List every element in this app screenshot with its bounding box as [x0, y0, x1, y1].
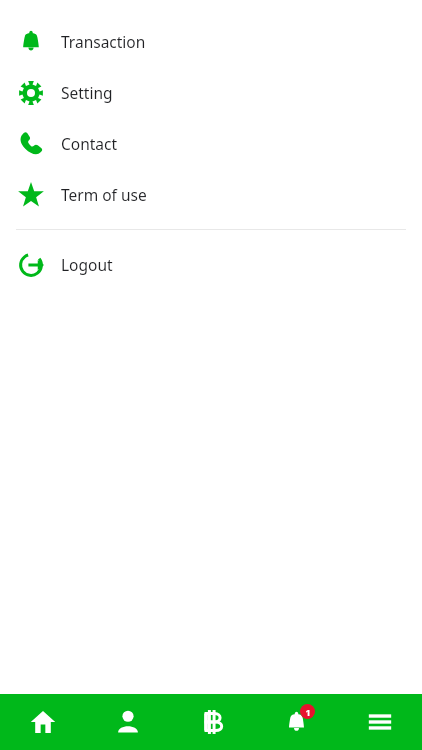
button[interactable]: Notifications, 1 new: [254, 694, 338, 750]
button[interactable]: Bitcoin: [170, 694, 254, 750]
button[interactable]: Menu: [338, 694, 422, 750]
button[interactable]: Transaction: [0, 16, 422, 67]
staticText: Term of use: [61, 184, 147, 205]
button[interactable]: Logout: [0, 239, 422, 290]
button[interactable]: Setting: [0, 67, 422, 118]
staticText: Logout: [61, 254, 113, 275]
staticText: Transaction: [61, 31, 146, 52]
button[interactable]: Home: [0, 694, 85, 750]
staticText: Setting: [61, 82, 113, 103]
button[interactable]: Profile: [85, 694, 170, 750]
staticText: Contact: [61, 133, 118, 154]
button[interactable]: Contact: [0, 118, 422, 169]
staticText: 1: [305, 706, 311, 718]
button[interactable]: Term of use: [0, 169, 422, 220]
